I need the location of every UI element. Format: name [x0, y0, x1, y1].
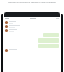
button[interactable]: Contact avatar [5, 49, 8, 52]
button[interactable]: Contact avatar [5, 49, 59, 52]
staticText: Donate 30 minutes of talking to help som… [3, 1, 61, 4]
button[interactable]: Contact avatar [5, 21, 59, 24]
button[interactable]: Contact avatar [5, 29, 8, 32]
button[interactable]: Contact avatar [5, 21, 8, 24]
button[interactable]: Chat header [4, 12, 60, 17]
button[interactable]: Contact avatar [5, 25, 59, 28]
button[interactable]: Contact avatar [5, 25, 8, 28]
button[interactable]: Contact avatar [5, 29, 59, 32]
